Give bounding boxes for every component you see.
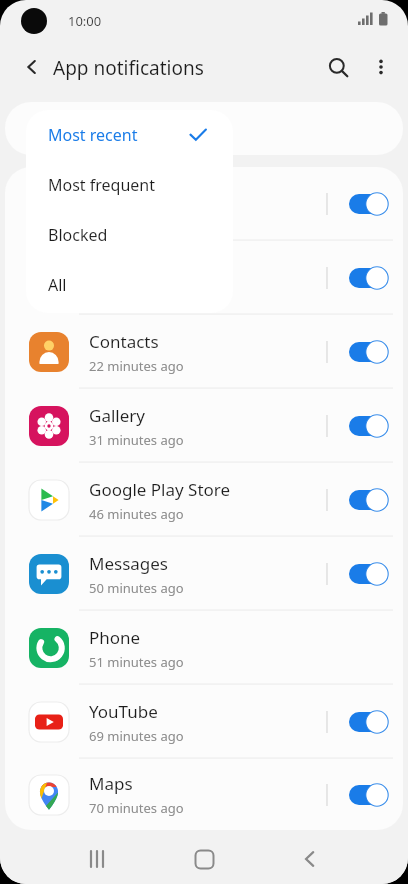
staticText: App notifications (53, 55, 204, 81)
staticText: 10:00 (68, 12, 102, 30)
button[interactable]: Toggle notifications (349, 562, 387, 586)
button[interactable] (5, 102, 403, 155)
button[interactable]: Messages (5, 537, 403, 611)
button[interactable]: Home (176, 834, 232, 884)
button[interactable]: Recents (70, 834, 126, 884)
staticText: Maps (89, 772, 133, 795)
staticText: 51 minutes ago (89, 653, 184, 671)
button[interactable]: YouTube (5, 685, 403, 759)
button[interactable]: Toggle notifications (349, 266, 387, 290)
button[interactable]: Toggle notifications (349, 340, 387, 364)
staticText: 70 minutes ago (89, 799, 184, 817)
staticText: Phone (89, 626, 141, 649)
button[interactable]: Most recent (26, 110, 233, 160)
button[interactable]: Toggle notifications (349, 192, 387, 216)
button[interactable]: Contacts (5, 315, 403, 389)
staticText: Messages (89, 552, 169, 575)
staticText: Google Play Store (89, 478, 231, 501)
button[interactable]: Most frequent (26, 160, 233, 210)
staticText: 69 minutes ago (89, 727, 184, 745)
button[interactable]: Google Play Store (5, 463, 403, 537)
staticText: Most frequent (48, 174, 156, 196)
staticText: Blocked (48, 224, 108, 246)
button[interactable]: Toggle notifications (5, 241, 403, 315)
button[interactable]: Toggle notifications (349, 783, 387, 807)
button[interactable]: Back (10, 45, 54, 89)
staticText: Gallery (89, 404, 145, 427)
button[interactable]: Toggle notifications (349, 710, 387, 734)
staticText: All (48, 274, 67, 296)
staticText: 50 minutes ago (89, 579, 184, 597)
button[interactable]: All (26, 260, 233, 310)
button[interactable]: Gallery (5, 389, 403, 463)
staticText: Contacts (89, 330, 159, 353)
staticText: 22 minutes ago (89, 357, 184, 375)
button[interactable]: Blocked (26, 210, 233, 260)
button[interactable]: Search (315, 44, 361, 90)
staticText: YouTube (89, 700, 158, 723)
button[interactable]: Phone (5, 611, 403, 685)
staticText: Most recent (48, 124, 138, 146)
button[interactable]: Toggle notifications (5, 167, 403, 241)
button[interactable]: Maps (5, 759, 403, 830)
button[interactable]: More options (359, 45, 403, 89)
button[interactable]: Toggle notifications (349, 414, 387, 438)
staticText: 46 minutes ago (89, 505, 184, 523)
button[interactable]: Back (282, 834, 338, 884)
staticText: 31 minutes ago (89, 431, 184, 449)
button[interactable]: Toggle notifications (349, 488, 387, 512)
